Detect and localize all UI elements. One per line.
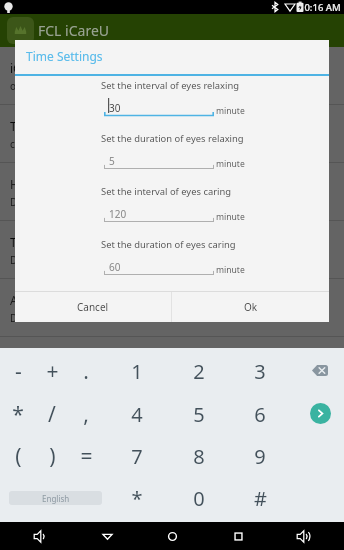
staticText: Ok bbox=[244, 300, 258, 314]
staticText: 8 bbox=[193, 443, 205, 470]
staticText: Set the duration of eyes relaxing bbox=[101, 132, 244, 145]
button[interactable]: - bbox=[2, 357, 34, 385]
staticText: Set the interval of eyes caring bbox=[101, 185, 232, 198]
button[interactable]: , bbox=[70, 400, 102, 428]
staticText: Health Record bbox=[10, 176, 90, 192]
staticText: Cancel bbox=[77, 300, 109, 314]
staticText: 1 bbox=[131, 358, 143, 385]
button[interactable]: 2 bbox=[183, 357, 215, 385]
button[interactable]: ) bbox=[36, 442, 68, 470]
button[interactable]: About bbox=[0, 279, 344, 337]
staticText: configure reminder intervals bbox=[10, 137, 144, 151]
staticText: Temperature bbox=[10, 234, 83, 250]
staticText: Device temperature data bbox=[10, 253, 127, 267]
staticText: 0 bbox=[193, 485, 205, 512]
button[interactable]: Backspace bbox=[306, 359, 334, 381]
button[interactable]: . bbox=[70, 357, 102, 385]
staticText: 2 bbox=[193, 358, 205, 385]
staticText: minute bbox=[216, 105, 245, 117]
staticText: * bbox=[131, 485, 143, 512]
staticText: Set the duration of eyes caring bbox=[101, 238, 236, 251]
button[interactable]: App icon bbox=[7, 17, 34, 44]
staticText: minute bbox=[216, 264, 245, 276]
button[interactable]: 9 bbox=[244, 442, 276, 470]
button[interactable]: * bbox=[121, 484, 153, 512]
staticText: 120 bbox=[109, 207, 127, 221]
staticText: English bbox=[42, 493, 70, 504]
button[interactable]: Ok bbox=[172, 292, 329, 322]
staticText: 30 bbox=[109, 101, 121, 115]
button[interactable]: 0 bbox=[183, 484, 215, 512]
staticText: + bbox=[46, 357, 59, 385]
button[interactable]: 7 bbox=[121, 442, 153, 470]
staticText: 7 bbox=[131, 443, 143, 470]
staticText: Data of recent eye care bbox=[10, 195, 118, 209]
button[interactable]: Health Record bbox=[0, 163, 344, 221]
staticText: = bbox=[80, 442, 93, 470]
button[interactable]: / bbox=[36, 400, 68, 428]
staticText: 3 bbox=[254, 358, 266, 385]
staticText: - bbox=[15, 357, 22, 385]
button[interactable]: 3 bbox=[244, 357, 276, 385]
staticText: Time Settings bbox=[26, 48, 103, 64]
button[interactable]: Volume down bbox=[20, 522, 60, 550]
staticText: , bbox=[83, 400, 89, 428]
button[interactable]: 4 bbox=[121, 400, 153, 428]
staticText: / bbox=[48, 400, 56, 428]
button[interactable]: 1 bbox=[121, 357, 153, 385]
staticText: iCareU Switch bbox=[10, 60, 88, 76]
button[interactable]: * bbox=[2, 400, 34, 428]
button[interactable]: Home bbox=[152, 522, 192, 550]
button[interactable]: English bbox=[9, 491, 102, 505]
button[interactable]: 6 bbox=[244, 400, 276, 428]
staticText: ( bbox=[15, 442, 22, 470]
staticText: FCL iCareU bbox=[38, 21, 110, 40]
button[interactable]: Back bbox=[87, 522, 127, 550]
button[interactable]: Volume up bbox=[283, 522, 323, 550]
staticText: # bbox=[254, 485, 267, 512]
button[interactable]: Time Settings bbox=[0, 105, 344, 163]
staticText: minute bbox=[216, 158, 245, 170]
staticText: Device information bbox=[10, 311, 100, 325]
staticText: 5 bbox=[109, 154, 115, 168]
button[interactable]: iCareU Switch bbox=[0, 47, 344, 105]
button[interactable]: ( bbox=[2, 442, 34, 470]
button[interactable]: Cancel bbox=[15, 292, 171, 322]
staticText: . bbox=[83, 357, 89, 385]
button[interactable]: # bbox=[244, 484, 276, 512]
staticText: minute bbox=[216, 211, 245, 223]
staticText: 10:16 AM bbox=[299, 1, 341, 14]
staticText: 60 bbox=[109, 260, 121, 274]
button[interactable]: Enter bbox=[310, 403, 331, 424]
button[interactable]: + bbox=[36, 357, 68, 385]
button[interactable]: 8 bbox=[183, 442, 215, 470]
staticText: Time Settings bbox=[10, 118, 87, 134]
staticText: Set the interval of eyes relaxing bbox=[101, 79, 240, 92]
staticText: 9 bbox=[254, 443, 266, 470]
staticText: 5 bbox=[193, 401, 205, 428]
button[interactable]: Recents bbox=[218, 522, 258, 550]
staticText: About bbox=[10, 292, 45, 308]
button[interactable]: = bbox=[70, 442, 102, 470]
button[interactable]: Temperature bbox=[0, 221, 344, 279]
staticText: 4 bbox=[131, 401, 143, 428]
staticText: * bbox=[12, 400, 24, 428]
staticText: open the iCareU service bbox=[10, 79, 122, 93]
button[interactable]: 5 bbox=[183, 400, 215, 428]
staticText: ) bbox=[49, 442, 56, 470]
staticText: 6 bbox=[254, 401, 266, 428]
